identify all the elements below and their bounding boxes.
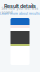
staticText: Result details xyxy=(4,3,36,9)
staticText: See how your test was scored xyxy=(1,7,38,14)
staticText: Learn more about results xyxy=(0,12,40,15)
